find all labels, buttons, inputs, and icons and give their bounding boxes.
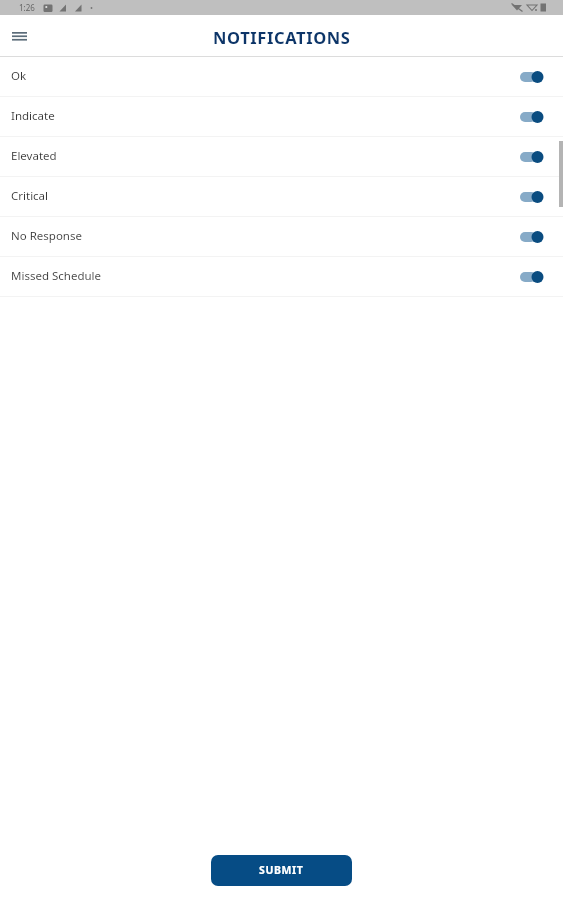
- staticText: Missed Schedule: [11, 268, 102, 284]
- staticText: Elevated: [11, 148, 57, 164]
- staticText: No Response: [11, 228, 82, 244]
- button[interactable]: Elevated: [0, 137, 563, 176]
- staticText: SUBMIT: [259, 863, 304, 877]
- staticText: Critical: [11, 188, 49, 204]
- staticText: Indicate: [11, 108, 55, 124]
- button[interactable]: No Response notifications enabled: [520, 229, 544, 245]
- button[interactable]: Ok notifications enabled: [520, 69, 544, 85]
- button[interactable]: Missed Schedule notifications enabled: [520, 269, 544, 285]
- button[interactable]: Open navigation menu: [1, 18, 38, 55]
- button[interactable]: Ok: [0, 57, 563, 96]
- button[interactable]: SUBMIT: [211, 855, 352, 886]
- button[interactable]: Missed Schedule: [0, 257, 563, 296]
- staticText: NOTIFICATIONS: [213, 26, 351, 48]
- button[interactable]: Critical notifications enabled: [520, 189, 544, 205]
- button[interactable]: Critical: [0, 177, 563, 216]
- button[interactable]: Indicate notifications enabled: [520, 109, 544, 125]
- staticText: 1:26: [19, 2, 35, 13]
- staticText: Ok: [11, 68, 27, 84]
- button[interactable]: Indicate: [0, 97, 563, 136]
- button[interactable]: No Response: [0, 217, 563, 256]
- button[interactable]: Elevated notifications enabled: [520, 149, 544, 165]
